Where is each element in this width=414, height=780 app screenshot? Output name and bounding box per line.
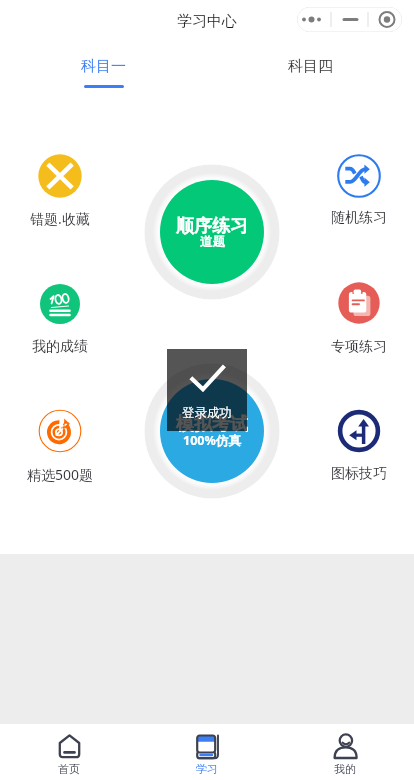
staticText: 科目一 [81,57,126,76]
staticText: 我的成绩 [5,338,115,356]
staticText: 模拟考试 [176,413,248,436]
staticText: 登录成功 [182,405,232,421]
button[interactable]: 科目一 [0,44,207,90]
staticText: 道题 [200,234,225,250]
button[interactable]: 我的 [276,724,414,780]
button[interactable]: Menu [297,7,402,32]
button[interactable]: 科目四 [207,44,414,90]
button[interactable] [337,154,381,198]
staticText: 100%仿真 [183,432,241,449]
staticText: 我的 [334,762,356,776]
button[interactable] [38,154,82,198]
staticText: 科目四 [288,57,333,76]
staticText: 首页 [58,762,80,776]
staticText: 图标技巧 [304,465,414,483]
staticText: 学习 [196,762,218,776]
button[interactable] [38,282,82,326]
staticText: 学习中心 [177,12,237,31]
button[interactable] [38,409,82,453]
staticText: 随机练习 [304,209,414,227]
button[interactable]: 顺序练习 [145,165,279,299]
button[interactable] [337,409,381,453]
staticText: 错题.收藏 [5,209,115,228]
staticText: 精选500题 [5,465,115,484]
button[interactable] [337,281,381,325]
button[interactable]: 模拟考试 [145,364,279,498]
button[interactable]: 首页 [0,724,138,780]
staticText: 顺序练习 [176,215,248,238]
button[interactable]: 学习 [138,724,276,780]
staticText: 专项练习 [304,338,414,356]
